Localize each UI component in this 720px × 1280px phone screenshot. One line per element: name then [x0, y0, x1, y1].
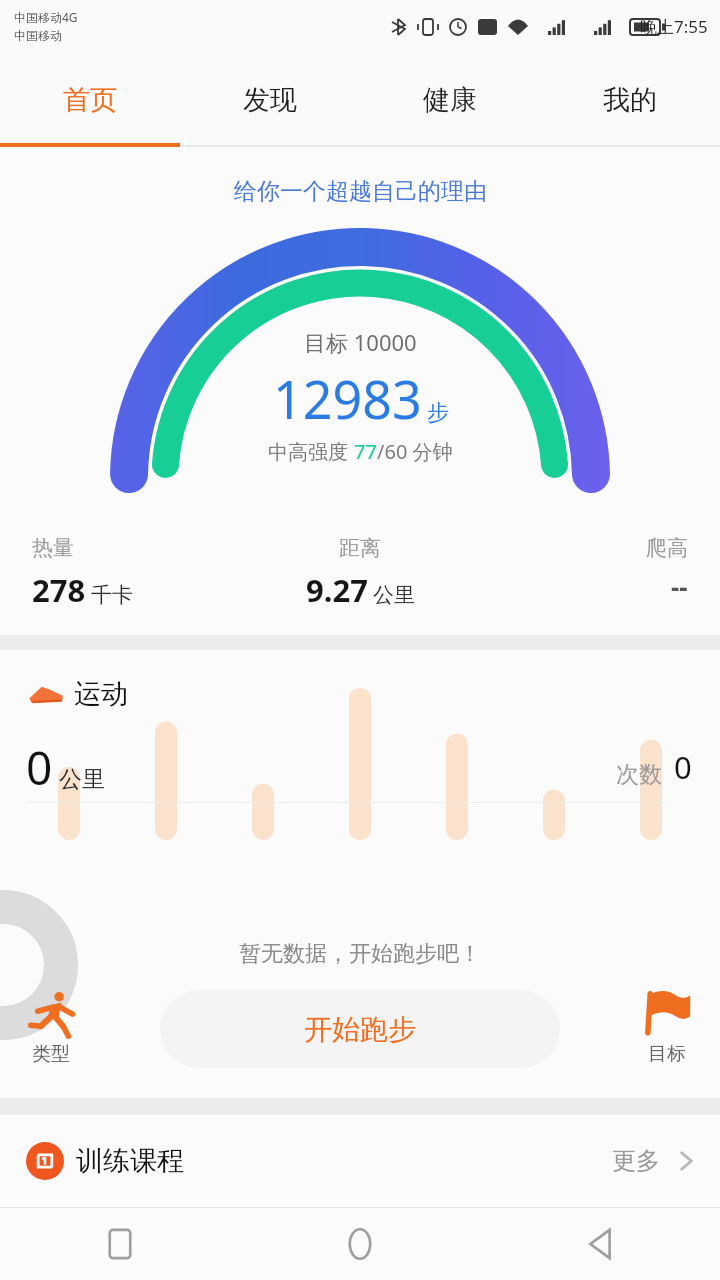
- button[interactable]: Home: [240, 1208, 480, 1280]
- staticText: 278: [32, 569, 86, 611]
- staticText: 公里: [373, 582, 415, 608]
- button[interactable]: 运动目标: [638, 984, 696, 1066]
- staticText: 我的: [603, 83, 657, 117]
- staticText: 爬高: [646, 535, 688, 561]
- staticText: --: [671, 569, 688, 604]
- staticText: 目标 10000: [304, 327, 417, 357]
- staticText: /60 分钟: [377, 438, 453, 465]
- staticText: 中国移动4G: [14, 9, 78, 25]
- button[interactable]: 首页: [0, 52, 180, 147]
- staticText: 千卡: [91, 582, 133, 608]
- staticText: 运动: [74, 677, 128, 711]
- staticText: 健康: [423, 83, 477, 117]
- button[interactable]: 我的: [540, 52, 720, 147]
- button[interactable]: 爬高: [480, 535, 688, 604]
- button[interactable]: 运动类型: [22, 984, 80, 1066]
- staticText: 训练课程: [76, 1144, 184, 1178]
- button[interactable]: 健康: [360, 52, 540, 147]
- staticText: 目标: [648, 1042, 686, 1066]
- button[interactable]: Recents: [0, 1208, 240, 1280]
- staticText: 9.27: [306, 569, 368, 611]
- button[interactable]: Back: [480, 1208, 720, 1280]
- staticText: 类型: [32, 1042, 70, 1066]
- button[interactable]: 热量: [32, 535, 240, 611]
- staticText: 0: [26, 736, 53, 799]
- staticText: 晚上7:55: [640, 15, 708, 38]
- staticText: 更多: [612, 1146, 660, 1176]
- staticText: 公里: [59, 765, 105, 794]
- staticText: 开始跑步: [304, 1012, 416, 1047]
- staticText: 发现: [243, 83, 297, 117]
- staticText: 中国移动: [14, 28, 62, 43]
- staticText: 次数: [616, 760, 662, 789]
- staticText: 给你一个超越自己的理由: [234, 177, 487, 206]
- staticText: 12983: [273, 363, 422, 434]
- staticText: 0: [674, 746, 692, 788]
- button[interactable]: 训练课程: [0, 1115, 720, 1207]
- staticText: 热量: [32, 535, 74, 561]
- button[interactable]: 距离: [240, 535, 480, 611]
- button[interactable]: 开始跑步: [160, 990, 560, 1068]
- button[interactable]: 发现: [180, 52, 360, 147]
- staticText: 暂无数据，开始跑步吧！: [239, 940, 481, 968]
- staticText: 77: [354, 438, 377, 465]
- staticText: 步: [427, 399, 449, 427]
- staticText: 中高强度: [268, 438, 354, 465]
- staticText: 距离: [339, 535, 381, 561]
- staticText: 首页: [63, 83, 117, 117]
